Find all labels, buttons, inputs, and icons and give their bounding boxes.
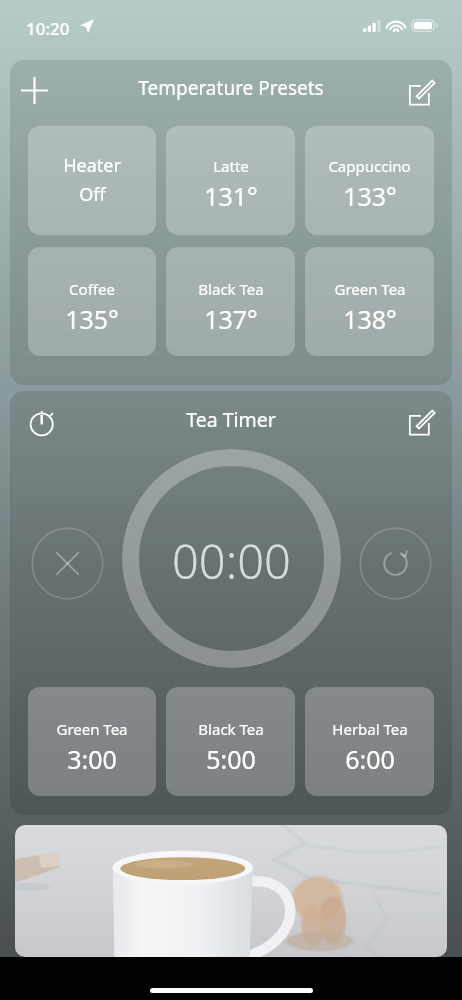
button[interactable]: Timer options: [25, 405, 59, 439]
staticText: Off: [79, 182, 106, 207]
staticText: 5:00: [206, 742, 256, 776]
staticText: Green Tea: [334, 279, 406, 299]
staticText: Black Tea: [198, 719, 264, 739]
staticText: Temperature Presets: [138, 75, 324, 101]
button[interactable]: Cancel timer: [31, 527, 104, 600]
staticText: Green Tea: [56, 719, 128, 739]
staticText: 135°: [65, 302, 119, 336]
staticText: Heater: [63, 153, 121, 178]
staticText: Cappuccino: [328, 156, 411, 176]
staticText: Tea Timer: [186, 406, 276, 433]
staticText: Latte: [213, 156, 249, 176]
button[interactable]: [15, 825, 447, 957]
staticText: 6:00: [345, 742, 395, 776]
button[interactable]: Coffee: [28, 247, 156, 356]
button[interactable]: Green Tea: [305, 247, 434, 356]
staticText: 3:00: [67, 742, 117, 776]
staticText: 137°: [204, 302, 258, 336]
staticText: 10:20: [26, 17, 70, 40]
button[interactable]: Heater: [28, 126, 156, 235]
staticText: Black Tea: [198, 279, 264, 299]
staticText: 133°: [343, 179, 397, 213]
button[interactable]: Latte: [166, 126, 295, 235]
staticText: Coffee: [69, 279, 115, 299]
button[interactable]: Start timer: [122, 449, 341, 668]
button[interactable]: Green Tea: [28, 687, 156, 796]
staticText: 00:00: [172, 529, 291, 593]
staticText: 138°: [343, 302, 397, 336]
button[interactable]: Herbal Tea: [305, 687, 434, 796]
button[interactable]: Edit: [403, 73, 437, 107]
button[interactable]: Black Tea: [166, 247, 295, 356]
button[interactable]: Add preset: [17, 73, 51, 107]
button[interactable]: Restart timer: [359, 527, 432, 600]
button[interactable]: Cappuccino: [305, 126, 434, 235]
button[interactable]: Edit: [403, 403, 437, 437]
button[interactable]: Black Tea: [166, 687, 295, 796]
staticText: 131°: [204, 179, 258, 213]
staticText: Herbal Tea: [332, 719, 408, 739]
